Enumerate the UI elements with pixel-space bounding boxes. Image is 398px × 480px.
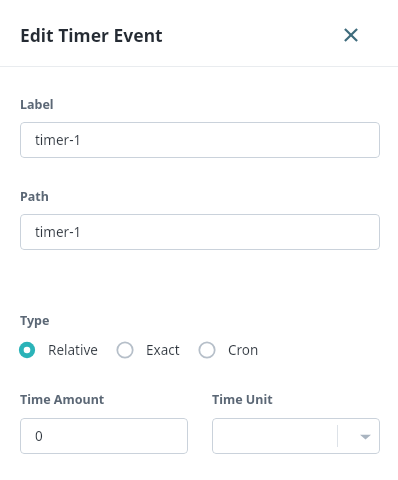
button[interactable]: Cron <box>196 339 259 361</box>
button[interactable]: Select time unit <box>212 418 380 454</box>
staticText: timer-1 <box>35 223 82 241</box>
staticText: Relative <box>48 341 98 359</box>
staticText: Type <box>20 312 50 329</box>
staticText: Edit Timer Event <box>20 23 163 47</box>
staticText: Cron <box>228 341 259 359</box>
staticText: Exact <box>146 341 180 359</box>
button[interactable]: Relative <box>16 339 98 361</box>
button[interactable]: timer-1 <box>20 122 380 158</box>
staticText: Label <box>20 96 54 113</box>
button[interactable]: 0 <box>20 418 188 454</box>
staticText: Time Unit <box>212 391 273 408</box>
staticText: Time Amount <box>20 391 105 408</box>
button[interactable]: Close <box>334 18 368 52</box>
staticText: Path <box>20 188 49 205</box>
staticText: timer-1 <box>35 131 82 149</box>
button[interactable]: timer-1 <box>20 214 380 250</box>
button[interactable]: Exact <box>114 339 180 361</box>
staticText: 0 <box>35 427 43 445</box>
